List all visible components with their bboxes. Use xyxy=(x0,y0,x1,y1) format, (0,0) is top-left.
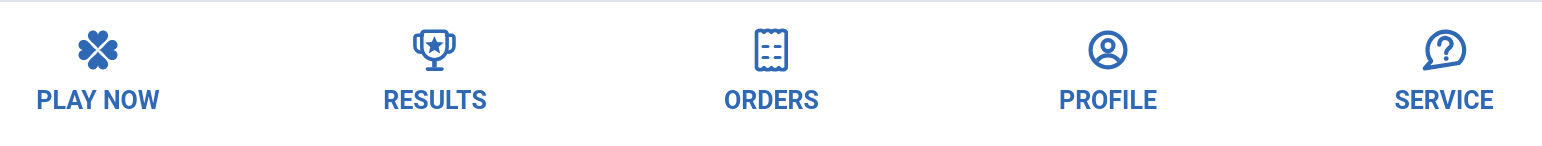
button[interactable]: Play now xyxy=(0,2,196,115)
button[interactable]: Orders xyxy=(673,2,869,115)
other: Play now xyxy=(76,28,120,72)
staticText: PLAY NOW xyxy=(36,86,160,115)
button[interactable]: Service xyxy=(1346,2,1542,115)
button[interactable]: Profile xyxy=(1010,2,1206,115)
staticText: SERVICE xyxy=(1394,86,1494,115)
staticText: RESULTS xyxy=(383,86,487,115)
other: Profile xyxy=(1086,28,1130,72)
other: Orders xyxy=(749,28,793,72)
other: Service xyxy=(1422,28,1466,72)
button[interactable]: Results xyxy=(337,2,533,115)
other: Results xyxy=(413,28,457,72)
staticText: ORDERS xyxy=(724,86,819,115)
staticText: PROFILE xyxy=(1059,86,1157,115)
